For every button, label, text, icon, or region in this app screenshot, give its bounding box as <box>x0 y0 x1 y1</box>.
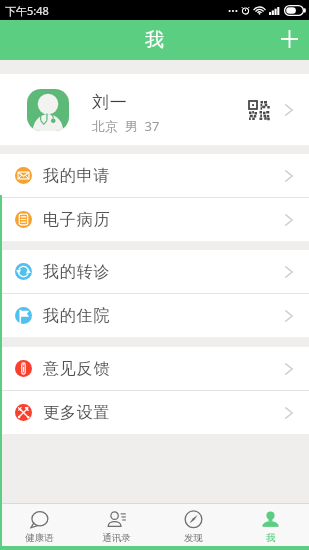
staticText: 健康语 <box>25 532 54 544</box>
staticText: 刘一 <box>92 92 127 113</box>
button[interactable]: 意见反馈 <box>0 347 309 390</box>
button[interactable]: 我的住院 <box>0 294 309 337</box>
button[interactable]: 我的申请 <box>0 154 309 197</box>
staticText: 北京 男 37 <box>92 117 160 135</box>
staticText: 下午5:48 <box>5 3 49 18</box>
staticText: 我 <box>145 28 164 52</box>
staticText: 意见反馈 <box>43 359 111 379</box>
staticText: 电子病历 <box>43 210 111 230</box>
button[interactable]: QR code <box>244 95 274 125</box>
staticText: 发现 <box>184 532 203 544</box>
staticText: 我的转诊 <box>43 262 111 282</box>
button[interactable]: 电子病历 <box>0 198 309 241</box>
button[interactable]: 更多设置 <box>0 391 309 434</box>
staticText: 我的住院 <box>43 306 111 326</box>
staticText: 更多设置 <box>43 403 111 423</box>
staticText: 我的申请 <box>43 166 111 186</box>
button[interactable]: Add <box>269 20 309 60</box>
button[interactable]: 健康语 <box>0 504 78 550</box>
button[interactable]: 刘一 <box>0 74 309 145</box>
staticText: 通讯录 <box>102 532 131 544</box>
button[interactable]: 发现 <box>155 504 232 550</box>
button[interactable]: 我 <box>232 504 309 550</box>
button[interactable]: 通讯录 <box>78 504 155 550</box>
button[interactable]: 我的转诊 <box>0 250 309 293</box>
staticText: 我 <box>266 532 276 544</box>
